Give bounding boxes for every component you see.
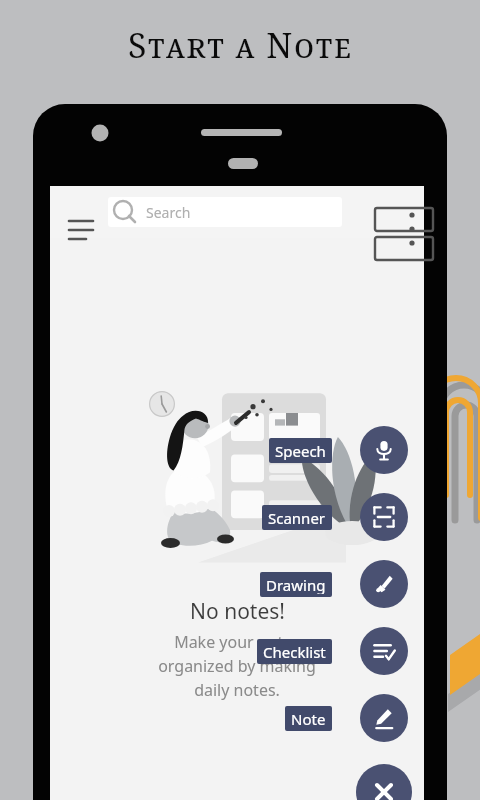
button[interactable]: Checklist	[257, 639, 332, 664]
button[interactable]: Note	[285, 706, 332, 731]
button[interactable]: Menu	[66, 198, 94, 226]
staticText: Sᴛᴀʀᴛ ᴀ Nᴏᴛᴇ	[128, 22, 353, 68]
button[interactable]: Search	[108, 197, 342, 227]
staticText: Checklist	[263, 642, 326, 661]
button[interactable]: Note	[360, 694, 408, 742]
button[interactable]: Scanner	[262, 505, 332, 530]
staticText: Make your notes organized by making dail…	[158, 631, 316, 701]
button[interactable]: Checklist	[360, 627, 408, 675]
staticText: No notes!	[190, 597, 285, 626]
button[interactable]: Scanner	[360, 493, 408, 541]
button[interactable]: Toggle view	[366, 199, 392, 225]
staticText: Search	[146, 203, 191, 222]
staticText: Drawing	[266, 575, 326, 594]
button[interactable]: More options	[400, 199, 424, 223]
staticText: Scanner	[268, 508, 326, 527]
button[interactable]: Drawing	[360, 560, 408, 608]
button[interactable]: Speech	[360, 426, 408, 474]
button[interactable]: Close	[356, 764, 412, 800]
staticText: Note	[291, 709, 326, 728]
button[interactable]: Drawing	[260, 572, 332, 597]
button[interactable]: Speech	[269, 438, 332, 463]
staticText: Speech	[275, 441, 326, 460]
